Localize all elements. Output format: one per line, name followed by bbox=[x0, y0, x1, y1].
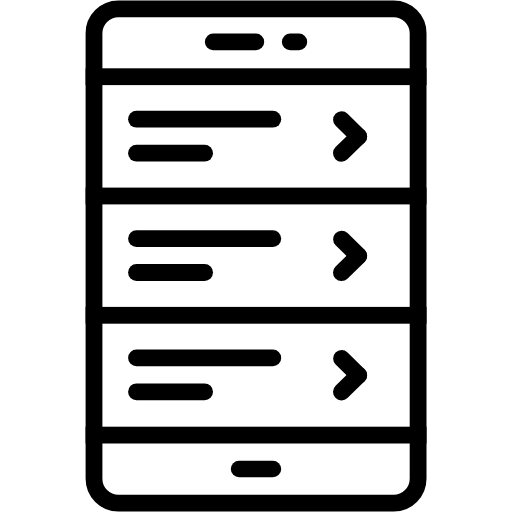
button[interactable]: List item 3 bbox=[102, 324, 409, 427]
button[interactable]: Home bbox=[231, 461, 281, 478]
button[interactable]: List item 2 bbox=[102, 204, 409, 307]
button[interactable]: List item 1 bbox=[102, 85, 409, 188]
